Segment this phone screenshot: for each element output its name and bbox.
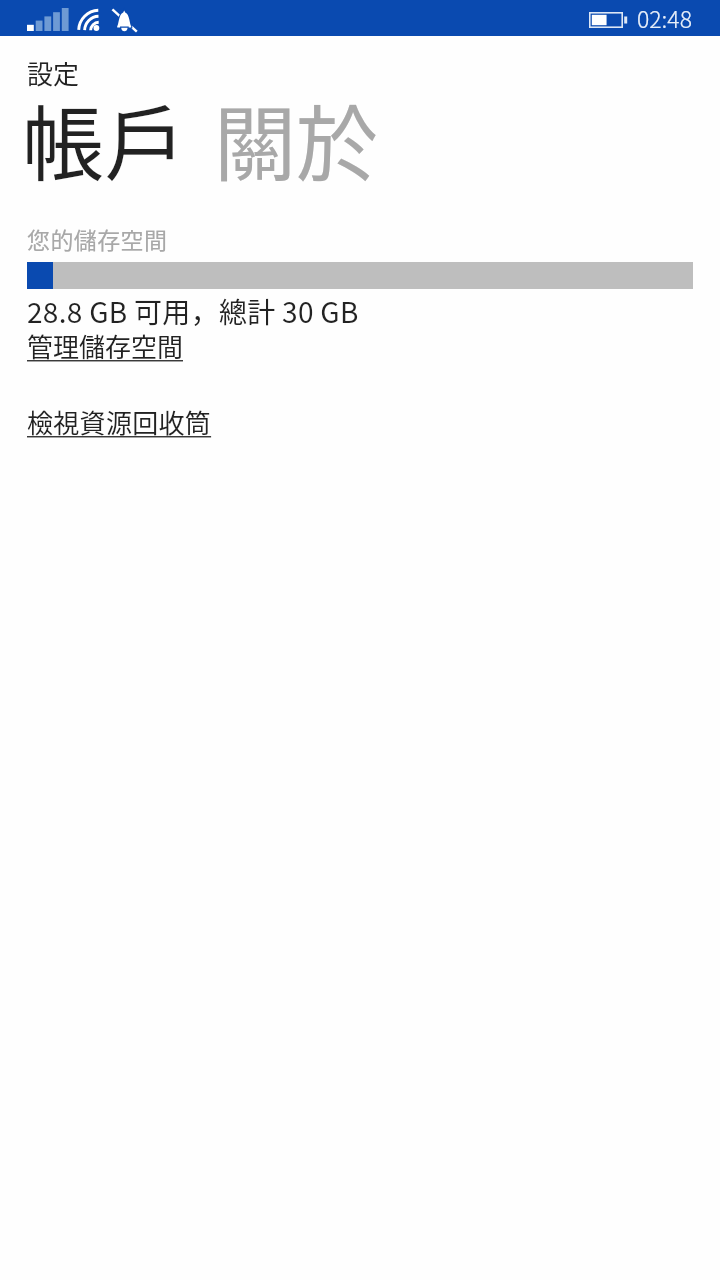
staticText: 28.8 GB 可用，總計 30 GB bbox=[27, 291, 359, 332]
button[interactable]: 關於 bbox=[214, 79, 379, 198]
button[interactable]: 檢視資源回收筒 bbox=[27, 403, 212, 441]
staticText: 02:48 bbox=[637, 1, 692, 34]
button[interactable]: 帳戶 bbox=[22, 79, 187, 198]
staticText: 您的儲存空間 bbox=[27, 222, 168, 255]
other: Silent mode bbox=[111, 4, 138, 34]
staticText: 設定 bbox=[27, 54, 80, 92]
button[interactable]: 管理儲存空間 bbox=[27, 327, 184, 365]
